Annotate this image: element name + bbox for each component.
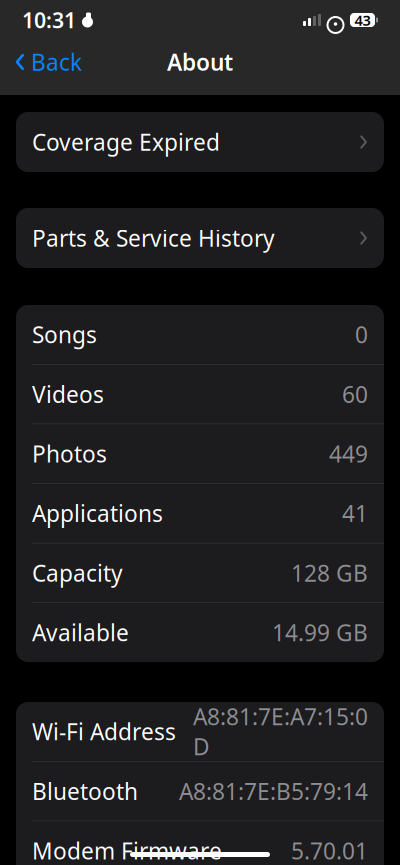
staticText: 0	[355, 319, 368, 349]
staticText: A8:81:7E:A7:15:0D	[193, 701, 368, 762]
staticText: Parts & Service History	[32, 223, 275, 253]
staticText: Songs	[32, 319, 97, 349]
staticText: Bluetooth	[32, 776, 138, 806]
staticText: 14.99 GB	[272, 617, 368, 647]
staticText: Capacity	[32, 558, 123, 588]
staticText: 5.70.01	[291, 836, 368, 865]
staticText: Back	[31, 47, 82, 77]
staticText: 128 GB	[291, 558, 368, 588]
staticText: About	[167, 47, 233, 77]
button[interactable]: Back	[4, 39, 92, 85]
staticText: 10:31	[22, 6, 76, 34]
staticText: 60	[342, 379, 368, 409]
staticText: Available	[32, 617, 129, 647]
staticText: Applications	[32, 498, 163, 528]
staticText: Coverage Expired	[32, 127, 220, 157]
button[interactable]: Coverage Expired	[16, 112, 384, 172]
staticText: 449	[329, 439, 368, 469]
staticText: 41	[342, 498, 368, 528]
staticText: Photos	[32, 439, 107, 469]
staticText: 43	[354, 10, 370, 30]
button[interactable]: Parts & Service History	[16, 208, 384, 268]
staticText: A8:81:7E:B5:79:14	[179, 776, 368, 806]
staticText: Wi-Fi Address	[32, 716, 176, 746]
staticText: Videos	[32, 379, 104, 409]
staticText: Modem Firmware	[32, 836, 222, 865]
